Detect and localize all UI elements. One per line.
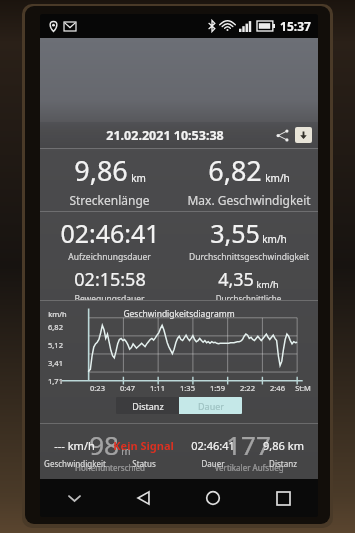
staticText: 98 — [89, 427, 119, 462]
staticText: 9,86 km — [263, 438, 304, 453]
staticText: 1:35 — [180, 383, 195, 393]
staticText: 1:59 — [210, 383, 225, 393]
staticText: Dauer — [201, 458, 225, 469]
staticText: 3,55 — [210, 216, 260, 250]
button[interactable]: Dauer — [179, 397, 242, 414]
staticText: Vertikaler Aufstieg — [214, 462, 284, 473]
button[interactable]: km/h — [40, 301, 318, 397]
staticText: Dauer — [198, 400, 224, 412]
staticText: 21.02.2021 10:53:38 — [106, 127, 224, 144]
staticText: Streckenlänge — [69, 192, 150, 208]
staticText: Max. Geschwindigkeit — [187, 192, 311, 208]
staticText: --- km/h — [54, 438, 95, 453]
staticText: 02:15:58 — [74, 267, 146, 292]
staticText: Status — [132, 458, 156, 469]
staticText: 177 — [226, 427, 271, 462]
staticText: 2:46 — [270, 383, 285, 393]
staticText: km — [131, 171, 146, 185]
staticText: 9,86 — [74, 152, 128, 189]
staticText: 15:37 — [280, 18, 311, 34]
staticText: Distanz — [132, 400, 164, 412]
staticText: Kein Signal — [113, 438, 174, 453]
staticText: m — [121, 444, 131, 458]
staticText: Durchschnittliche Bewegungsgeschwin... — [179, 293, 318, 300]
button[interactable]: Distanz — [116, 397, 179, 414]
staticText: Höhenunterschied — [75, 462, 145, 473]
staticText: 1,71 — [48, 376, 63, 386]
staticText: 1:11 — [150, 383, 165, 393]
staticText: 4,35 — [218, 267, 254, 292]
staticText: 02:46:41 — [60, 216, 160, 250]
staticText: 0:47 — [120, 383, 135, 393]
staticText: km/h — [48, 309, 67, 319]
staticText: St:M — [295, 383, 311, 393]
button[interactable]: Startbildschirm — [178, 479, 248, 517]
staticText: km/h — [265, 171, 290, 185]
button[interactable]: Letzte Apps — [248, 479, 318, 517]
staticText: Distanz — [269, 458, 297, 469]
staticText: Geschwindigkeit — [44, 458, 106, 469]
staticText: 2:22 — [240, 383, 255, 393]
button[interactable]: Tastatur ausblenden — [40, 479, 109, 517]
staticText: Geschwindigkeitsdiagramm — [123, 308, 235, 320]
staticText: km/h — [262, 232, 287, 246]
button[interactable]: Zurück — [109, 479, 178, 517]
button[interactable]: 98 — [40, 424, 318, 474]
staticText: 3,41 — [48, 358, 63, 368]
staticText: 6,82 — [48, 322, 63, 332]
button[interactable]: 02:46:41 — [40, 212, 318, 300]
staticText: Durchschnittsgeschwindigkeit — [189, 251, 309, 263]
staticText: km/h — [256, 278, 279, 290]
button[interactable]: Exportieren — [295, 127, 312, 143]
staticText: 6,82 — [208, 152, 262, 189]
button[interactable]: 9,86 — [40, 149, 318, 211]
staticText: 5,12 — [48, 340, 63, 350]
staticText: 0:23 — [90, 383, 105, 393]
staticText: Bewegungsdauer — [74, 293, 145, 300]
staticText: 02:46:41 — [191, 438, 235, 453]
staticText: Aufzeichnungsdauer — [68, 251, 151, 263]
button[interactable]: Teilen — [271, 124, 293, 146]
